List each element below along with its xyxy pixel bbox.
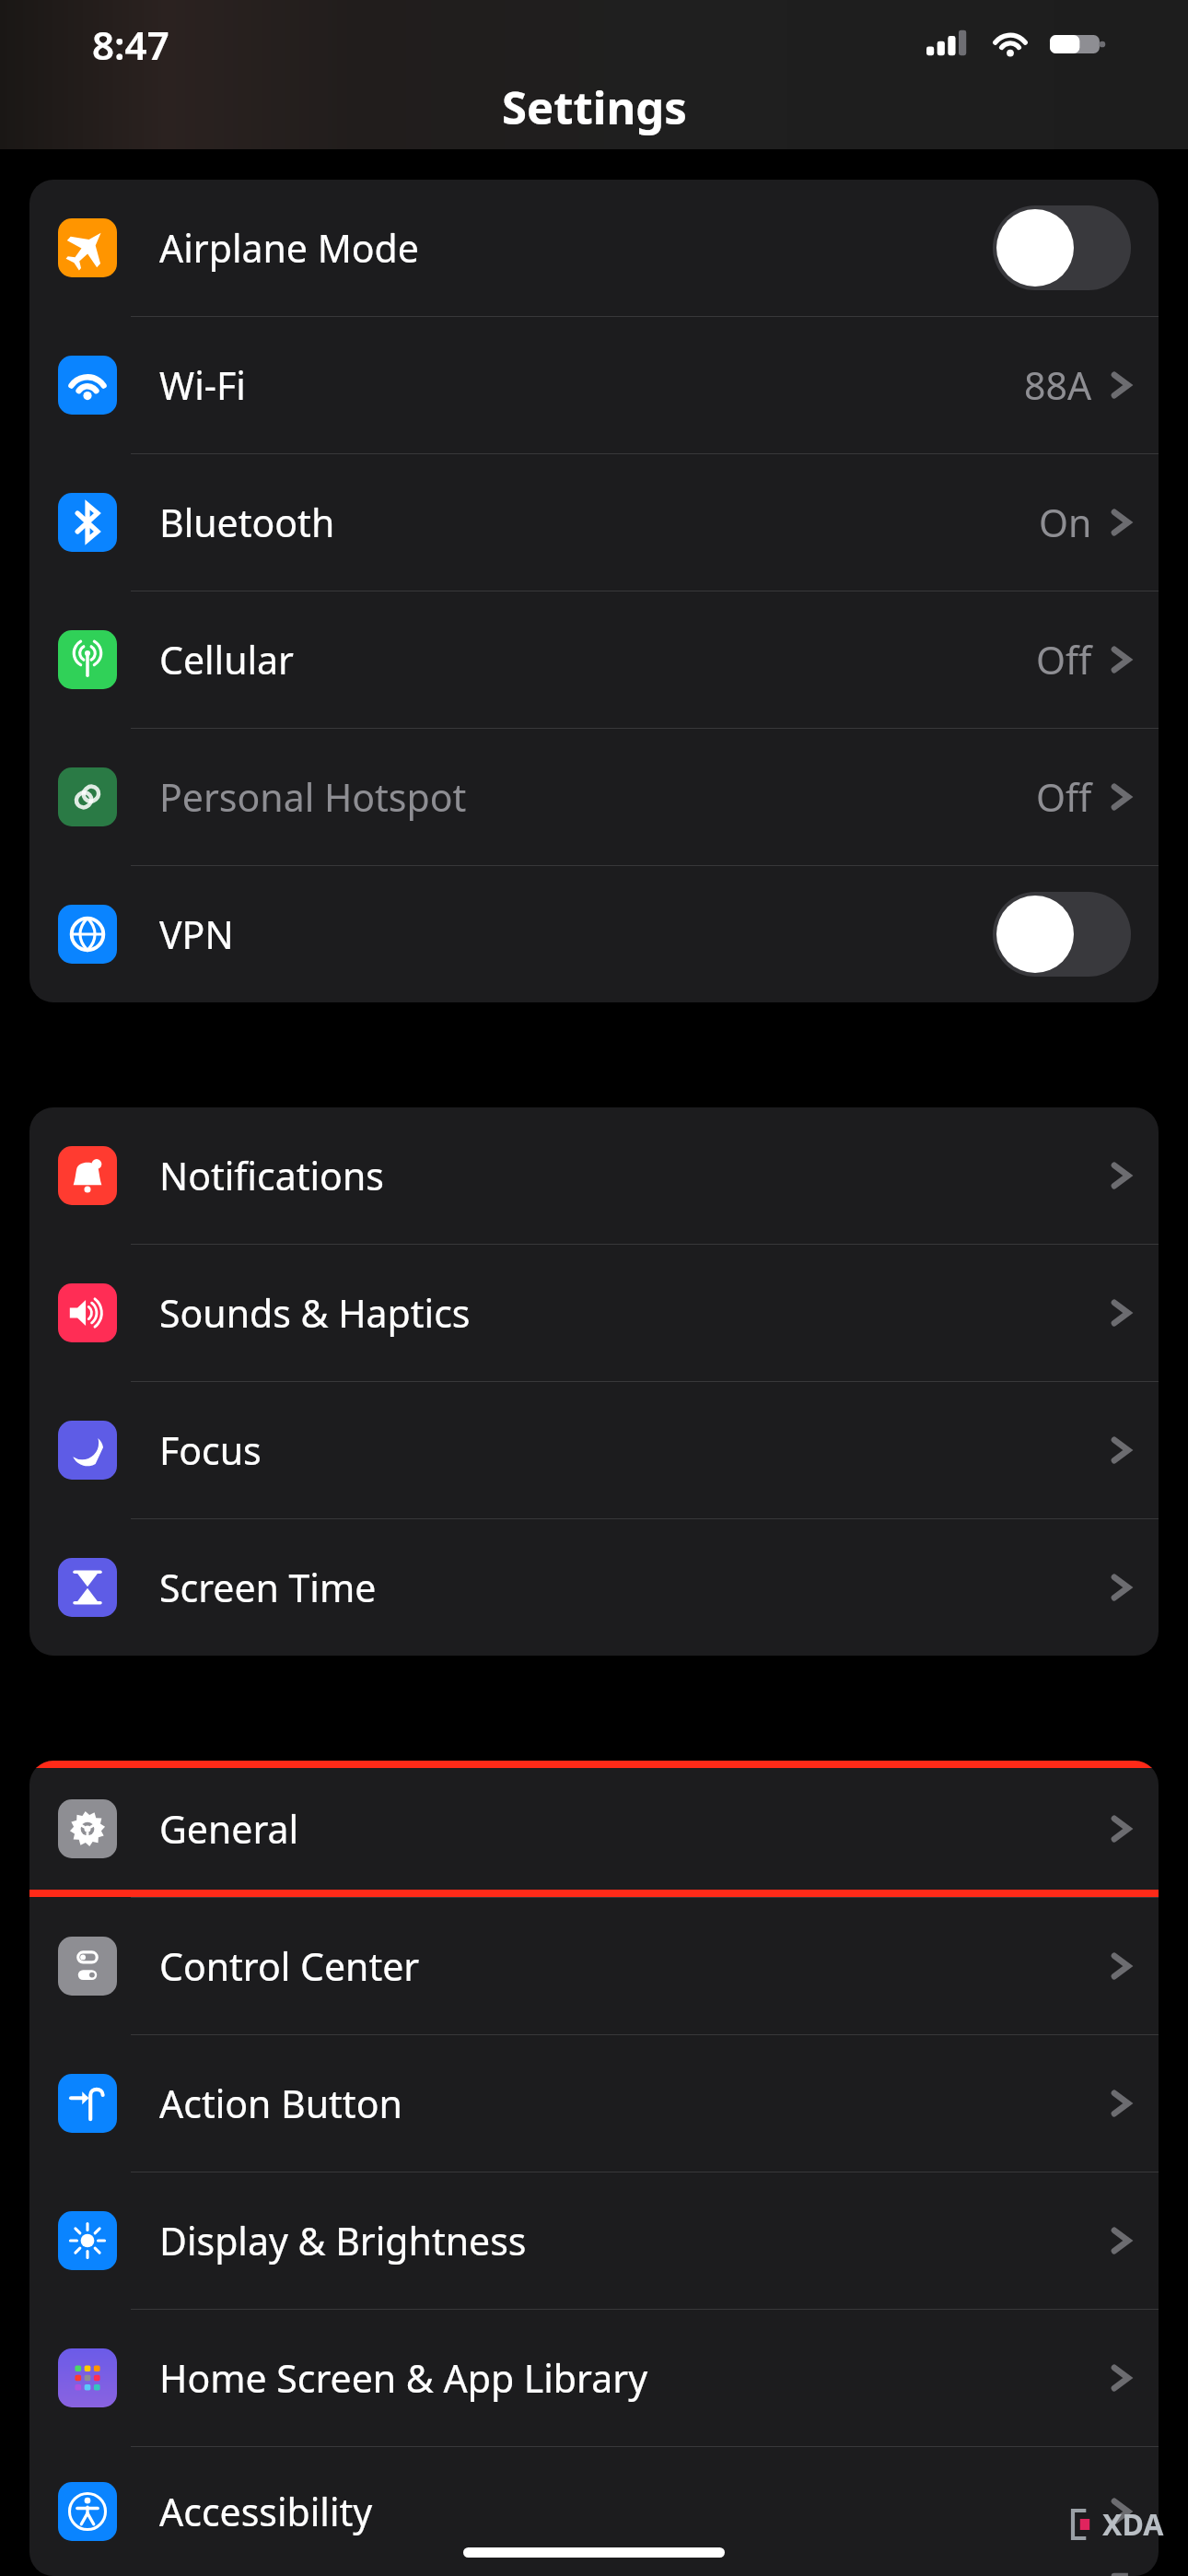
staticText: Control Center [159, 1940, 1111, 1992]
staticText: XDA [1102, 2504, 1164, 2545]
staticText: Settings [502, 76, 687, 138]
staticText: On [1039, 497, 1092, 548]
staticText: Bluetooth [159, 497, 1039, 548]
staticText: Sounds & Haptics [159, 1287, 1111, 1339]
staticText: Off [1036, 634, 1092, 685]
button[interactable]: Accessibility [29, 2447, 1159, 2576]
staticText: Display & Brightness [159, 2215, 1111, 2266]
button[interactable]: Display & Brightness [29, 2172, 1159, 2309]
button[interactable]: Personal Hotspot [29, 729, 1159, 865]
staticText: Off [1036, 771, 1092, 823]
staticText: Cellular [159, 634, 1036, 685]
staticText: General [159, 1803, 1111, 1855]
staticText: VPN [159, 908, 993, 960]
button[interactable]: Cellular [29, 591, 1159, 728]
button[interactable]: Screen Time [29, 1519, 1159, 1656]
button[interactable]: Focus [29, 1382, 1159, 1518]
button[interactable]: Control Center [29, 1898, 1159, 2034]
staticText: Focus [159, 1424, 1111, 1476]
staticText: Accessibility [159, 2486, 1111, 2537]
button[interactable]: Action Button [29, 2035, 1159, 2172]
staticText: Action Button [159, 2078, 1111, 2129]
button[interactable]: Notifications [29, 1107, 1159, 1244]
button[interactable]: General [29, 1761, 1159, 1897]
button[interactable]: Sounds & Haptics [29, 1245, 1159, 1381]
button[interactable]: VPN [29, 866, 1159, 1002]
button[interactable]: Airplane Mode [29, 180, 1159, 316]
staticText: Screen Time [159, 1562, 1111, 1613]
staticText: Wi-Fi [159, 359, 1024, 411]
staticText: 8:47 [92, 18, 169, 71]
staticText: Personal Hotspot [159, 771, 1036, 823]
staticText: Notifications [159, 1150, 1111, 1201]
button[interactable]: Toggle [993, 205, 1131, 290]
staticText: Airplane Mode [159, 222, 993, 274]
staticText: 88A [1024, 359, 1092, 411]
button[interactable]: Home Screen & App Library [29, 2310, 1159, 2446]
staticText: Home Screen & App Library [159, 2352, 1111, 2404]
button[interactable]: Wi-Fi [29, 317, 1159, 453]
button[interactable]: Toggle [993, 892, 1131, 977]
button[interactable]: Bluetooth [29, 454, 1159, 591]
